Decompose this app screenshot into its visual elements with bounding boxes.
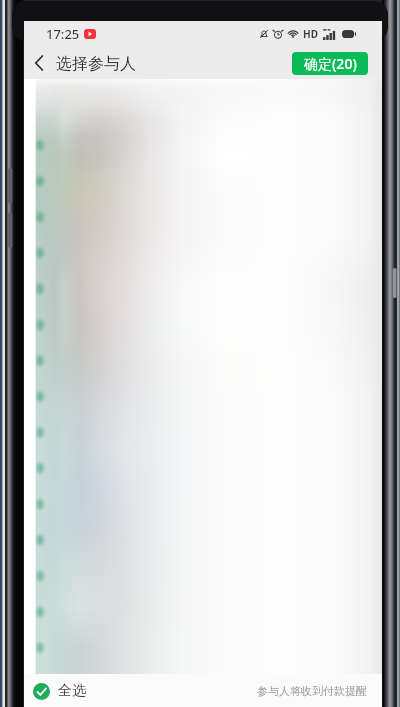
button[interactable]: 全选 [33, 682, 86, 700]
staticText: 参与人将收到付款提醒 [257, 684, 367, 698]
button[interactable]: 确定(20) [292, 52, 368, 75]
staticText: 选择参与人 [56, 54, 136, 74]
staticText: HD [303, 27, 318, 41]
staticText: 全选 [58, 682, 86, 700]
button[interactable]: Back [24, 48, 54, 78]
staticText: 17:25 [46, 25, 80, 43]
staticText: 确定(20) [304, 54, 357, 73]
